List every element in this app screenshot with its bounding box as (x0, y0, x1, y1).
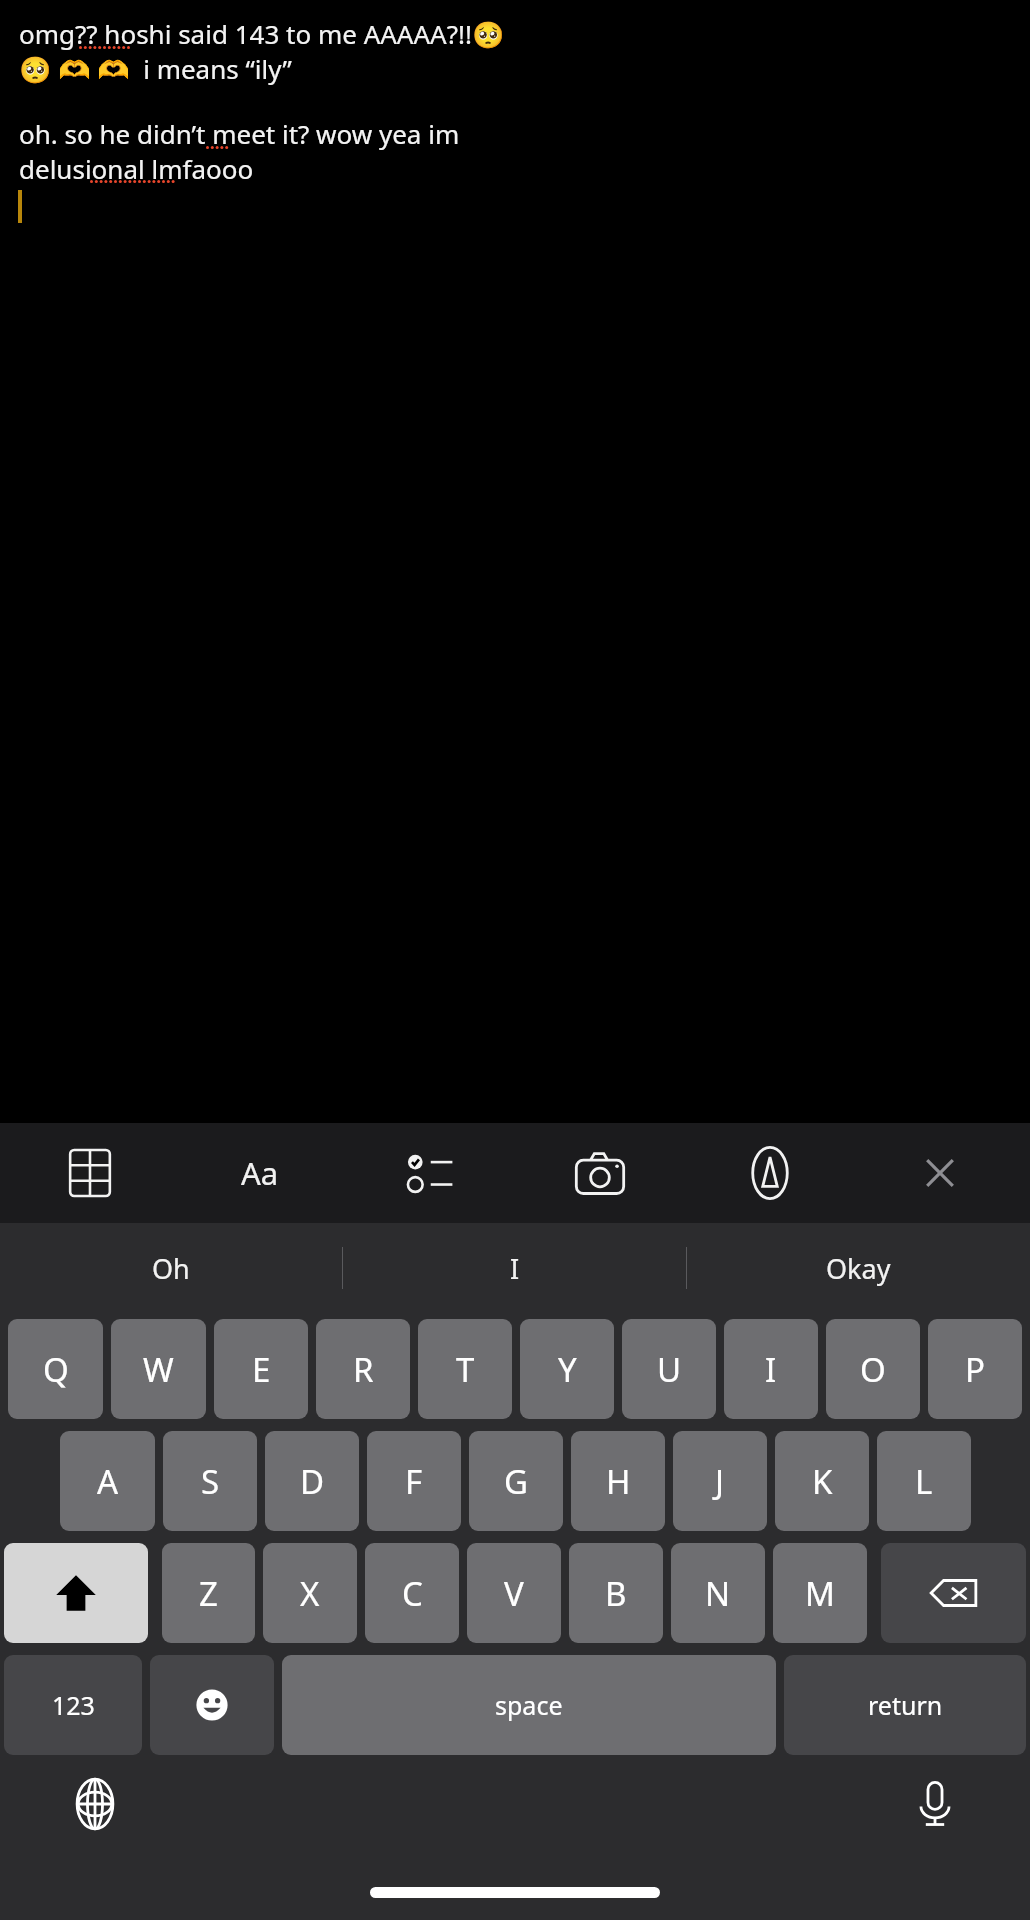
staticText: return (868, 1688, 943, 1722)
staticText: L (915, 1459, 933, 1504)
staticText: B (605, 1571, 627, 1616)
button[interactable]: I (724, 1319, 818, 1419)
button[interactable]: V (467, 1543, 561, 1643)
staticText: R (353, 1347, 374, 1392)
staticText: V (504, 1571, 524, 1616)
staticText: Oh (152, 1250, 190, 1287)
button[interactable]: Oh (0, 1223, 342, 1313)
staticText: U (657, 1347, 682, 1392)
staticText: Y (558, 1347, 577, 1392)
button[interactable]: Z (162, 1543, 255, 1643)
button[interactable]: Q (8, 1319, 103, 1419)
staticText: 🥺 🫶 🫶 i means “ily” (19, 51, 292, 86)
button[interactable]: D (265, 1431, 359, 1531)
button[interactable]: G (469, 1431, 563, 1531)
staticText: G (504, 1459, 529, 1504)
button[interactable]: Okay (687, 1223, 1030, 1313)
staticText: K (812, 1459, 833, 1504)
button[interactable]: J (673, 1431, 767, 1531)
staticText: M (805, 1571, 835, 1616)
staticText: I (510, 1250, 520, 1287)
staticText: delusional lmfaooo (19, 151, 254, 186)
staticText: Z (199, 1571, 218, 1616)
button[interactable]: return (784, 1655, 1026, 1755)
button[interactable]: L (877, 1431, 971, 1531)
staticText: F (405, 1459, 423, 1504)
button[interactable]: 123 (4, 1655, 142, 1755)
staticText: 123 (52, 1688, 95, 1722)
button[interactable]: Emoji (150, 1655, 274, 1755)
button[interactable]: X (263, 1543, 357, 1643)
staticText: Aa (241, 1152, 279, 1194)
button[interactable]: O (826, 1319, 920, 1419)
button[interactable]: Shift (4, 1543, 148, 1643)
staticText: E (252, 1347, 271, 1392)
button[interactable]: Change keyboard language (60, 1769, 130, 1839)
staticText: space (495, 1688, 563, 1722)
staticText: D (300, 1459, 325, 1504)
staticText: H (606, 1459, 631, 1504)
staticText: I (765, 1347, 777, 1392)
button[interactable]: M (773, 1543, 867, 1643)
staticText: P (965, 1347, 985, 1392)
staticText: W (143, 1347, 174, 1392)
staticText: S (201, 1459, 220, 1504)
button[interactable]: S (163, 1431, 257, 1531)
button[interactable]: Markup (738, 1141, 802, 1205)
button[interactable]: Dictation (900, 1769, 970, 1839)
staticText: Q (43, 1347, 69, 1392)
staticText: C (402, 1571, 423, 1616)
staticText: omg?? hoshi said 143 to me AAAAA?!!🥺 (19, 16, 505, 51)
button[interactable]: W (111, 1319, 206, 1419)
button[interactable]: B (569, 1543, 663, 1643)
button[interactable]: N (671, 1543, 765, 1643)
staticText: O (860, 1347, 886, 1392)
button[interactable]: Table (58, 1141, 122, 1205)
button[interactable]: Backspace (881, 1543, 1026, 1643)
button[interactable]: P (928, 1319, 1022, 1419)
button[interactable]: space (282, 1655, 776, 1755)
button[interactable]: E (214, 1319, 308, 1419)
button[interactable]: Y (520, 1319, 614, 1419)
button[interactable]: T (418, 1319, 512, 1419)
button[interactable]: Camera (568, 1141, 632, 1205)
button[interactable]: I (343, 1223, 686, 1313)
staticText: A (97, 1459, 119, 1504)
button[interactable]: Close keyboard (908, 1141, 972, 1205)
button[interactable]: C (365, 1543, 459, 1643)
staticText: J (715, 1459, 725, 1504)
button[interactable]: U (622, 1319, 716, 1419)
staticText: Okay (826, 1250, 891, 1287)
button[interactable]: R (316, 1319, 410, 1419)
staticText: T (456, 1347, 475, 1392)
button[interactable]: A (60, 1431, 155, 1531)
button[interactable]: Checklist (398, 1141, 462, 1205)
staticText: N (705, 1571, 731, 1616)
button[interactable]: K (775, 1431, 869, 1531)
button[interactable]: F (367, 1431, 461, 1531)
button[interactable]: H (571, 1431, 665, 1531)
button[interactable]: Text format (228, 1141, 292, 1205)
staticText: oh. so he didn’t meet it? wow yea im (19, 116, 460, 151)
staticText: X (300, 1571, 320, 1616)
